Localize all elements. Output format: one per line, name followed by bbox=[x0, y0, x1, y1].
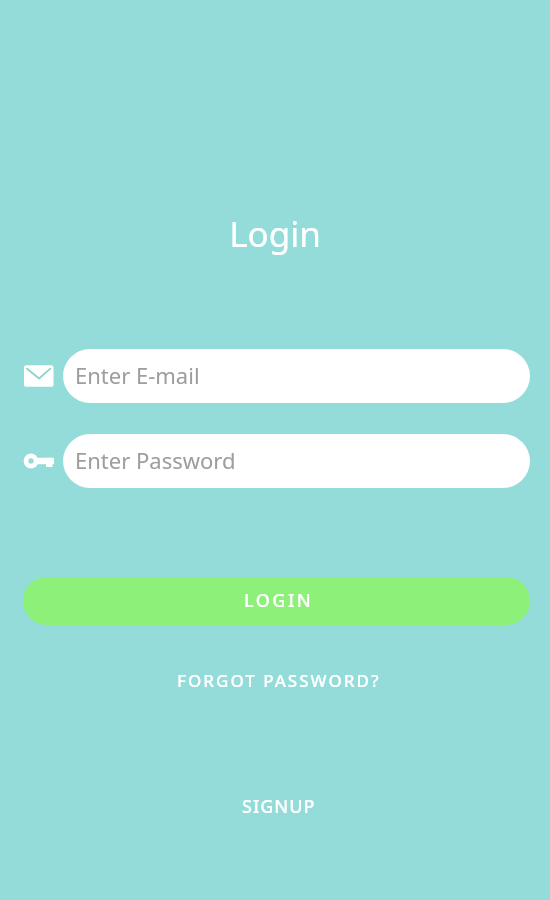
button[interactable]: Enter E-mail bbox=[63, 349, 530, 403]
button[interactable]: LOGIN bbox=[23, 577, 530, 625]
staticText: LOGIN bbox=[244, 588, 314, 613]
staticText: Enter E-mail bbox=[75, 360, 200, 390]
button[interactable]: Enter Password bbox=[63, 434, 530, 488]
staticText: Login bbox=[0, 210, 550, 900]
button[interactable]: SIGNUP bbox=[226, 788, 324, 825]
staticText: SIGNUP bbox=[242, 794, 316, 819]
button[interactable]: FORGOT PASSWORD? bbox=[161, 663, 389, 698]
staticText: Enter Password bbox=[75, 445, 236, 475]
staticText: FORGOT PASSWORD? bbox=[177, 669, 381, 692]
other: Email bbox=[24, 362, 54, 390]
other: Password bbox=[23, 450, 55, 472]
